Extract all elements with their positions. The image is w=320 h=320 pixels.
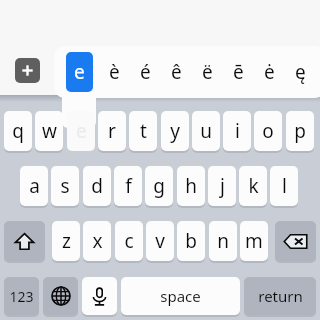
staticText: n: [217, 228, 229, 254]
staticText: e: [76, 118, 87, 144]
staticText: space: [160, 286, 201, 306]
staticText: y: [170, 118, 180, 144]
staticText: e: [74, 59, 85, 85]
staticText: ē: [233, 59, 244, 85]
button[interactable]: Next keyboard: [43, 277, 78, 315]
button[interactable]: Shift: [4, 221, 45, 261]
button[interactable]: ë: [193, 52, 221, 92]
button[interactable]: h: [177, 166, 205, 206]
button[interactable]: o: [254, 111, 282, 151]
staticText: c: [124, 228, 134, 254]
button[interactable]: e: [66, 52, 93, 92]
staticText: k: [248, 173, 259, 199]
button[interactable]: m: [240, 221, 268, 261]
staticText: ę: [295, 59, 306, 85]
staticText: v: [155, 228, 165, 254]
button[interactable]: c: [115, 221, 143, 261]
staticText: o: [262, 118, 274, 144]
staticText: return: [258, 286, 303, 306]
staticText: p: [294, 118, 306, 144]
staticText: 123: [9, 287, 34, 306]
staticText: ë: [202, 59, 213, 85]
staticText: t: [140, 118, 147, 144]
staticText: l: [282, 173, 287, 199]
button[interactable]: return: [244, 277, 316, 315]
staticText: w: [42, 118, 57, 144]
staticText: x: [92, 228, 103, 254]
button[interactable]: i: [223, 111, 251, 151]
staticText: g: [153, 173, 165, 199]
staticText: a: [29, 173, 40, 199]
staticText: d: [91, 173, 103, 199]
button[interactable]: y: [161, 111, 189, 151]
button[interactable]: b: [177, 221, 205, 261]
button[interactable]: p: [286, 111, 314, 151]
button[interactable]: d: [83, 166, 111, 206]
button[interactable]: q: [4, 111, 32, 151]
staticText: u: [200, 118, 212, 144]
button[interactable]: space: [121, 277, 240, 315]
button[interactable]: 123: [4, 277, 39, 315]
button[interactable]: Add keyboard: [15, 58, 40, 83]
button[interactable]: Backspace: [275, 221, 316, 261]
button[interactable]: r: [98, 111, 126, 151]
button[interactable]: l: [270, 166, 298, 206]
button[interactable]: é: [131, 52, 159, 92]
staticText: z: [62, 228, 71, 254]
button[interactable]: ę: [286, 52, 314, 92]
button[interactable]: è: [100, 52, 128, 92]
button[interactable]: Dictation: [82, 277, 117, 315]
button[interactable]: u: [192, 111, 220, 151]
staticText: b: [185, 228, 197, 254]
button[interactable]: x: [83, 221, 111, 261]
button[interactable]: s: [51, 166, 79, 206]
staticText: s: [60, 173, 70, 199]
button[interactable]: t: [129, 111, 157, 151]
staticText: i: [235, 118, 240, 144]
button[interactable]: z: [52, 221, 80, 261]
staticText: ė: [264, 59, 275, 85]
staticText: ê: [171, 59, 182, 85]
button[interactable]: g: [145, 166, 173, 206]
button[interactable]: n: [209, 221, 237, 261]
staticText: m: [245, 228, 263, 254]
staticText: é: [140, 59, 151, 85]
staticText: è: [109, 59, 120, 85]
button[interactable]: j: [208, 166, 236, 206]
button[interactable]: ē: [224, 52, 252, 92]
staticText: h: [185, 173, 197, 199]
button[interactable]: ė: [255, 52, 283, 92]
staticText: q: [12, 118, 24, 144]
button[interactable]: v: [146, 221, 174, 261]
button[interactable]: a: [20, 166, 48, 206]
staticText: r: [108, 118, 116, 144]
button[interactable]: e: [67, 111, 95, 151]
button[interactable]: w: [35, 111, 63, 151]
staticText: f: [125, 173, 132, 199]
button[interactable]: f: [114, 166, 142, 206]
button[interactable]: ê: [162, 52, 190, 92]
button[interactable]: k: [239, 166, 267, 206]
staticText: j: [220, 173, 225, 199]
